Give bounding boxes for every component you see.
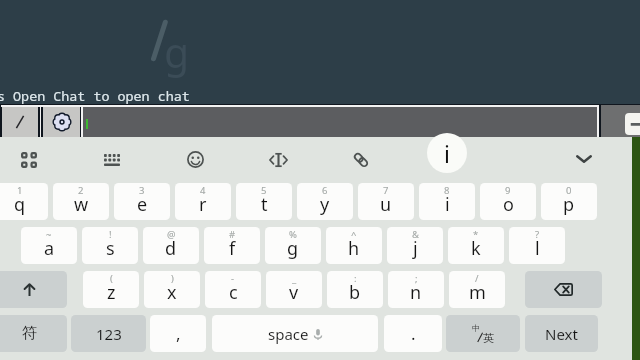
staticText: g <box>287 236 299 261</box>
button[interactable]: 0 <box>541 183 597 220</box>
staticText: s <box>106 236 115 261</box>
staticText: c <box>229 280 238 305</box>
staticText: ! <box>109 228 112 241</box>
button[interactable]: @ <box>143 227 199 264</box>
button[interactable]: 3 <box>114 183 170 220</box>
staticText: w <box>74 192 89 217</box>
staticText: v <box>289 280 299 305</box>
staticText: r <box>199 192 207 217</box>
staticText: p <box>563 192 575 217</box>
staticText: ~ <box>46 228 52 241</box>
button[interactable]: 9 <box>480 183 536 220</box>
button[interactable]: space <box>212 315 378 352</box>
button[interactable]: Next <box>525 315 598 352</box>
button[interactable]: 6 <box>297 183 353 220</box>
button[interactable]: Keyboard popup <box>625 113 640 135</box>
staticText: ) <box>171 272 174 285</box>
staticText: o <box>503 192 514 217</box>
staticText: f <box>229 236 236 261</box>
staticText: y <box>320 192 330 217</box>
button[interactable]: Extra keys <box>2 107 38 137</box>
button[interactable]: 1 <box>0 183 48 220</box>
staticText: n <box>410 280 422 305</box>
staticText: 5 <box>261 184 267 197</box>
staticText: ? <box>535 228 540 241</box>
staticText: 2 <box>78 184 84 197</box>
button[interactable]: Hide keyboard <box>565 140 603 178</box>
button[interactable]: Settings <box>43 107 80 137</box>
button[interactable]: Shift <box>0 271 67 308</box>
staticText: ^ <box>351 228 357 241</box>
button[interactable]: ( <box>83 271 139 308</box>
button[interactable]: / <box>449 271 505 308</box>
button[interactable]: . <box>384 315 442 352</box>
button[interactable]: : <box>327 271 383 308</box>
staticText: # <box>229 228 236 241</box>
staticText: 0 <box>566 184 572 197</box>
button[interactable]: # <box>204 227 260 264</box>
button[interactable]: ~ <box>21 227 77 264</box>
staticText: , <box>176 322 181 345</box>
button[interactable]: 4 <box>175 183 231 220</box>
button[interactable]: 5 <box>236 183 292 220</box>
staticText: . <box>411 322 416 345</box>
staticText: i <box>445 192 450 217</box>
button[interactable]: Switch language <box>446 315 520 352</box>
button[interactable]: ^ <box>326 227 382 264</box>
button[interactable]: Backspace <box>525 271 602 308</box>
button[interactable]: Clipboard <box>342 141 380 179</box>
button[interactable]: 8 <box>419 183 475 220</box>
staticText: Next <box>545 324 578 344</box>
button[interactable]: Emoji <box>176 140 214 178</box>
staticText: x <box>167 280 177 305</box>
staticText: l <box>535 236 540 261</box>
staticText: k <box>471 236 481 261</box>
staticText: 7 <box>383 184 389 197</box>
staticText: i <box>444 138 450 169</box>
staticText: % <box>289 228 297 241</box>
staticText: : <box>354 272 357 285</box>
staticText: b <box>349 280 361 305</box>
staticText: 1 <box>17 184 23 197</box>
button[interactable]: Switch keyboard <box>93 141 131 179</box>
staticText: j <box>413 236 418 261</box>
button[interactable]: 123 <box>71 315 146 352</box>
staticText: space <box>268 324 309 344</box>
button[interactable]: * <box>448 227 504 264</box>
staticText: h <box>348 236 360 261</box>
staticText: 中 <box>472 323 480 333</box>
button[interactable]: ! <box>82 227 138 264</box>
staticText: 符 <box>22 324 37 343</box>
button[interactable]: 2 <box>53 183 109 220</box>
button[interactable]: 7 <box>358 183 414 220</box>
staticText: @ <box>167 228 176 241</box>
button[interactable]: Apps <box>10 141 48 179</box>
button[interactable]: ; <box>388 271 444 308</box>
button[interactable]: - <box>205 271 261 308</box>
staticText: e <box>137 192 148 217</box>
staticText: 6 <box>322 184 328 197</box>
staticText: * <box>473 228 479 241</box>
button[interactable]: Input info <box>427 133 467 173</box>
button[interactable]: ? <box>509 227 565 264</box>
staticText: a <box>44 236 55 261</box>
button[interactable]: Text cursor <box>259 141 297 179</box>
staticText: z <box>107 280 116 305</box>
staticText: q <box>14 192 26 217</box>
button[interactable]: % <box>265 227 321 264</box>
staticText: t <box>261 192 268 217</box>
button[interactable]: , <box>150 315 206 352</box>
button[interactable]: & <box>387 227 443 264</box>
staticText: - <box>231 272 235 285</box>
staticText: 8 <box>444 184 450 197</box>
staticText: 4 <box>200 184 206 197</box>
staticText: d <box>165 236 177 261</box>
button[interactable]: _ <box>266 271 322 308</box>
staticText: 3 <box>139 184 145 197</box>
button[interactable]: Terminal input <box>83 107 598 137</box>
button[interactable]: 符 <box>0 315 67 352</box>
staticText: s Open Chat to open chat <box>0 87 190 105</box>
staticText: ( <box>110 272 113 285</box>
button[interactable]: ) <box>144 271 200 308</box>
staticText: 123 <box>96 324 122 344</box>
